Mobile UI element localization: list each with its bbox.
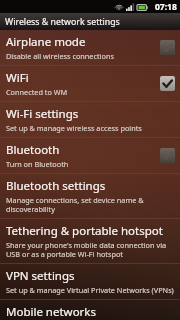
button[interactable]: VPN settings xyxy=(0,264,180,299)
staticText: WiFi xyxy=(6,70,29,86)
button[interactable]: Off xyxy=(160,40,175,55)
button[interactable]: Wi-Fi settings xyxy=(0,102,180,137)
staticText: VPN settings xyxy=(6,268,75,284)
staticText: Disable all wireless connections xyxy=(6,51,114,61)
button[interactable]: Airplane mode xyxy=(0,30,180,65)
staticText: Mobile networks xyxy=(6,304,97,316)
staticText: Set up & manage wireless access points xyxy=(6,123,142,133)
button[interactable]: Tethering & portable hotspot xyxy=(0,219,180,263)
staticText: Bluetooth xyxy=(6,142,60,158)
staticText: Wireless & network settings xyxy=(5,16,120,28)
staticText: Tethering & portable hotspot xyxy=(6,223,163,239)
staticText: Airplane mode xyxy=(6,34,86,50)
staticText: Manage connections, set device name & di… xyxy=(6,195,175,214)
button[interactable]: Mobile networks xyxy=(0,300,180,320)
staticText: Bluetooth settings xyxy=(6,178,106,194)
button[interactable]: Off xyxy=(160,148,175,163)
button[interactable]: On xyxy=(160,76,175,91)
button[interactable]: WiFi xyxy=(0,66,180,101)
staticText: Turn on Bluetooth xyxy=(6,159,69,169)
staticText: Wi-Fi settings xyxy=(6,106,79,122)
staticText: 07:18 xyxy=(155,1,177,13)
staticText: Connected to WM xyxy=(6,87,68,97)
button[interactable]: Bluetooth settings xyxy=(0,174,180,218)
staticText: Share your phone's mobile data connectio… xyxy=(6,240,175,259)
staticText: Set up & manage Virtual Private Networks… xyxy=(6,285,174,295)
button[interactable]: Bluetooth xyxy=(0,138,180,173)
